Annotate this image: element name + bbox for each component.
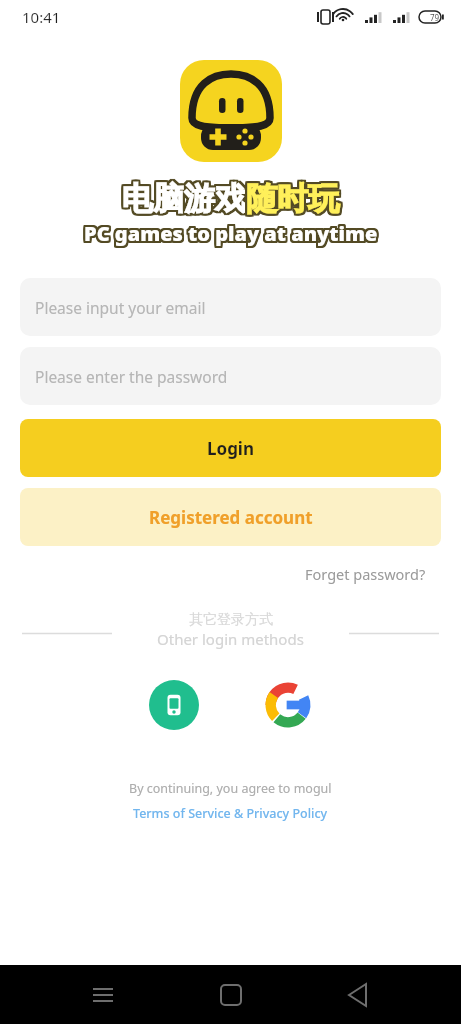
button[interactable]: Back <box>334 971 382 1019</box>
button[interactable]: Home <box>207 971 255 1019</box>
staticText: 电脑游戏 <box>122 180 246 219</box>
staticText: 电脑游戏 <box>120 180 244 219</box>
staticText: 电脑游戏 <box>124 179 248 218</box>
button[interactable]: Recent apps <box>79 971 127 1019</box>
staticText: 随时玩 <box>248 177 341 216</box>
staticText: 随时玩 <box>247 178 340 217</box>
staticText: 随时玩 <box>247 181 340 220</box>
staticText: 随时玩 <box>244 181 337 220</box>
staticText: PC games to play at anytime <box>84 222 378 249</box>
staticText: PC games to play at anytime <box>83 222 377 249</box>
staticText: 随时玩 <box>244 178 337 217</box>
staticText: 随时玩 <box>246 181 339 220</box>
staticText: Registered account <box>149 506 313 529</box>
staticText: 其它登录方式 <box>189 611 273 629</box>
staticText: 随时玩 <box>244 180 337 219</box>
button[interactable]: Login <box>20 419 441 477</box>
button[interactable]: Terms of Service & Privacy Policy <box>133 805 328 822</box>
staticText: PC games to play at anytime <box>82 222 376 249</box>
staticText: 电脑游戏 <box>121 181 245 220</box>
staticText: PC games to play at anytime <box>82 220 376 247</box>
staticText: PC games to play at anytime <box>85 222 379 249</box>
staticText: 电脑游戏 <box>122 179 246 218</box>
staticText: 电脑游戏 <box>121 180 245 219</box>
staticText: PC games to play at anytime <box>86 222 380 249</box>
staticText: PC games to play at anytime <box>83 219 377 246</box>
staticText: 随时玩 <box>245 179 338 218</box>
staticText: PC games to play at anytime <box>86 220 380 247</box>
staticText: 随时玩 <box>246 177 339 216</box>
staticText: 随时玩 <box>246 180 339 219</box>
staticText: PC games to play at anytime <box>82 218 376 245</box>
staticText: 电脑游戏 <box>120 181 244 220</box>
staticText: 电脑游戏 <box>123 180 247 219</box>
staticText: 随时玩 <box>244 179 337 218</box>
staticText: 电脑游戏 <box>121 178 245 217</box>
staticText: 电脑游戏 <box>124 181 248 220</box>
staticText: 电脑游戏 <box>122 178 246 217</box>
staticText: Please input your email <box>35 297 206 318</box>
staticText: 随时玩 <box>245 178 338 217</box>
staticText: PC games to play at anytime <box>84 218 378 245</box>
staticText: 随时玩 <box>245 177 338 216</box>
staticText: 随时玩 <box>247 179 340 218</box>
staticText: PC games to play at anytime <box>86 219 380 246</box>
staticText: 电脑游戏 <box>121 177 245 216</box>
staticText: 电脑游戏 <box>123 177 247 216</box>
staticText: PC games to play at anytime <box>84 221 378 248</box>
staticText: PC games to play at anytime <box>84 220 378 247</box>
staticText: 随时玩 <box>248 180 341 219</box>
staticText: 电脑游戏 <box>122 177 246 216</box>
staticText: 电脑游戏 <box>120 177 244 216</box>
button[interactable]: Registered account <box>20 488 441 546</box>
staticText: PC games to play at anytime <box>82 219 376 246</box>
staticText: 随时玩 <box>247 177 340 216</box>
staticText: 79 <box>430 12 440 23</box>
staticText: Other login methods <box>157 629 304 649</box>
staticText: 电脑游戏 <box>120 178 244 217</box>
staticText: PC games to play at anytime <box>83 220 377 247</box>
button[interactable]: Google login <box>263 680 313 730</box>
staticText: 电脑游戏 <box>123 178 247 217</box>
staticText: PC games to play at anytime <box>85 220 379 247</box>
button[interactable]: Phone login <box>149 680 199 730</box>
staticText: PC games to play at anytime <box>86 218 380 245</box>
staticText: 随时玩 <box>247 180 340 219</box>
staticText: Please enter the password <box>35 366 228 387</box>
staticText: 随时玩 <box>245 180 338 219</box>
staticText: 电脑游戏 <box>124 180 248 219</box>
staticText: 随时玩 <box>248 178 341 217</box>
staticText: 随时玩 <box>246 179 339 218</box>
staticText: 电脑游戏 <box>122 181 246 220</box>
staticText: 电脑游戏 <box>120 179 244 218</box>
staticText: 随时玩 <box>244 177 337 216</box>
staticText: PC games to play at anytime <box>85 219 379 246</box>
staticText: PC games to play at anytime <box>83 218 377 245</box>
button[interactable]: Forget password? <box>301 560 430 588</box>
button[interactable]: Please input your email <box>20 278 441 336</box>
button[interactable]: Please enter the password <box>20 347 441 405</box>
staticText: 随时玩 <box>246 178 339 217</box>
staticText: 电脑游戏 <box>123 179 247 218</box>
staticText: 随时玩 <box>245 181 338 220</box>
staticText: 电脑游戏 <box>124 178 248 217</box>
staticText: 电脑游戏 <box>123 181 247 220</box>
staticText: 电脑游戏 <box>124 177 248 216</box>
staticText: 10:41 <box>22 7 61 27</box>
staticText: By continuing, you agree to mogul <box>129 780 332 797</box>
staticText: 随时玩 <box>248 181 341 220</box>
staticText: Login <box>207 437 255 460</box>
staticText: PC games to play at anytime <box>85 218 379 245</box>
staticText: PC games to play at anytime <box>86 221 380 248</box>
staticText: 随时玩 <box>248 179 341 218</box>
staticText: PC games to play at anytime <box>84 219 378 246</box>
staticText: PC games to play at anytime <box>82 221 376 248</box>
staticText: Forget password? <box>305 564 426 584</box>
staticText: Terms of Service & Privacy Policy <box>133 805 328 822</box>
staticText: PC games to play at anytime <box>85 221 379 248</box>
staticText: PC games to play at anytime <box>83 221 377 248</box>
staticText: 电脑游戏 <box>121 179 245 218</box>
